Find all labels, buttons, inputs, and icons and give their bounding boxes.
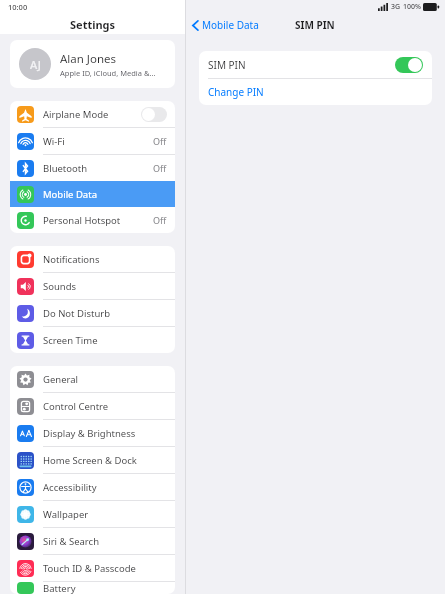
staticText: Accessibility [43, 481, 167, 494]
button[interactable]: Screen Time [10, 327, 175, 353]
button[interactable]: Siri & Search [10, 528, 175, 554]
button[interactable]: Notifications [10, 246, 175, 272]
button[interactable]: Battery [10, 582, 175, 594]
button[interactable]: Personal Hotspot [10, 207, 175, 233]
staticText: AJ [30, 57, 41, 72]
staticText: SIM PIN [295, 18, 335, 32]
staticText: Siri & Search [43, 535, 167, 548]
staticText: Do Not Disturb [43, 307, 167, 320]
staticText: 3G [391, 2, 401, 12]
button[interactable]: Accessibility [10, 474, 175, 500]
staticText: Settings [70, 17, 116, 32]
staticText: Battery [43, 582, 167, 594]
staticText: Off [153, 135, 167, 147]
staticText: Alan Jones [60, 51, 117, 67]
staticText: 100% [403, 2, 421, 12]
button[interactable]: Wallpaper [10, 501, 175, 527]
staticText: Mobile Data [202, 18, 259, 32]
button[interactable]: Touch ID & Passcode [10, 555, 175, 581]
staticText: Sounds [43, 280, 167, 293]
button[interactable]: Wi-Fi [10, 128, 175, 154]
staticText: General [43, 373, 167, 386]
staticText: Control Centre [43, 400, 167, 413]
staticText: Off [153, 214, 167, 226]
staticText: Airplane Mode [43, 108, 141, 121]
staticText: SIM PIN [208, 58, 395, 72]
button[interactable]: Airplane Mode [10, 101, 175, 127]
button[interactable]: Mobile Data [10, 181, 175, 207]
button[interactable]: Display & Brightness [10, 420, 175, 446]
button[interactable]: General [10, 366, 175, 392]
staticText: Home Screen & Dock [43, 454, 167, 467]
staticText: Notifications [43, 253, 167, 266]
button[interactable]: Control Centre [10, 393, 175, 419]
button[interactable]: Airplane Mode toggle [141, 107, 167, 122]
staticText: Display & Brightness [43, 427, 167, 440]
button[interactable]: Bluetooth [10, 155, 175, 181]
staticText: Off [153, 162, 167, 174]
button[interactable]: Home Screen & Dock [10, 447, 175, 473]
staticText: Touch ID & Passcode [43, 562, 167, 575]
button[interactable]: Do Not Disturb [10, 300, 175, 326]
button[interactable]: SIM PIN toggle [395, 57, 423, 73]
staticText: Change PIN [208, 85, 264, 99]
staticText: Personal Hotspot [43, 214, 153, 227]
button[interactable]: AJ [10, 40, 175, 88]
staticText: Bluetooth [43, 162, 153, 175]
staticText: Wallpaper [43, 508, 167, 521]
button[interactable]: SIM PIN [199, 51, 432, 78]
staticText: Mobile Data [43, 188, 167, 201]
button[interactable]: Sounds [10, 273, 175, 299]
staticText: Apple ID, iCloud, Media &... [60, 68, 156, 78]
button[interactable]: Mobile Data [186, 18, 265, 32]
staticText: Screen Time [43, 334, 167, 347]
staticText: 10:00 [8, 2, 28, 12]
button[interactable]: Change PIN [199, 79, 432, 105]
staticText: Wi-Fi [43, 135, 153, 148]
